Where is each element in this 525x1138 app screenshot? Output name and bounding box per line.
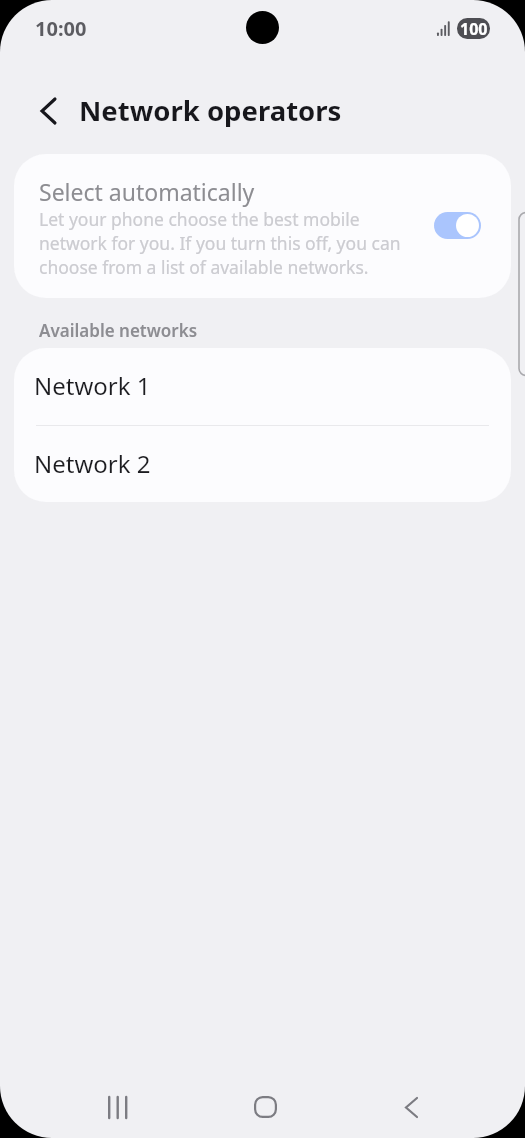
- button[interactable]: Select automatically toggle: [434, 212, 481, 239]
- staticText: 10:00: [35, 15, 87, 42]
- staticText: Network 1: [34, 369, 151, 402]
- button[interactable]: Select automatically: [14, 154, 511, 298]
- staticText: Available networks: [39, 319, 198, 342]
- staticText: 100: [460, 18, 488, 39]
- staticText: Let your phone choose the best mobile ne…: [39, 207, 411, 279]
- staticText: Select automatically: [39, 176, 255, 207]
- button[interactable]: Home: [229, 1071, 301, 1138]
- button[interactable]: Recent apps: [82, 1071, 154, 1138]
- button[interactable]: Network 2: [14, 426, 511, 502]
- button[interactable]: Network 1: [14, 348, 511, 425]
- staticText: Network operators: [79, 92, 342, 129]
- staticText: Network 2: [34, 447, 151, 480]
- button[interactable]: Back: [26, 89, 70, 133]
- button[interactable]: Back: [375, 1071, 447, 1138]
